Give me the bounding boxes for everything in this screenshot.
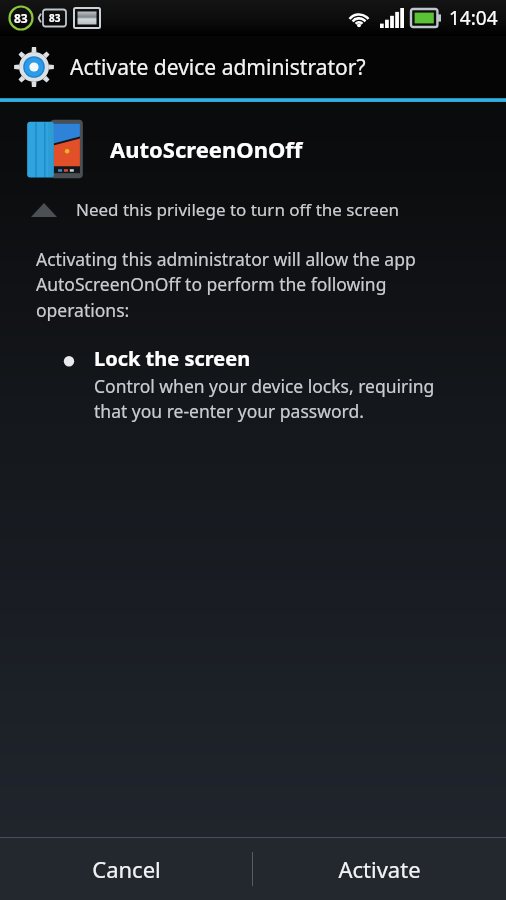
staticText: Activate <box>338 854 421 884</box>
staticText: 83 <box>49 11 61 25</box>
staticText: Control when your device locks, requirin… <box>94 374 466 423</box>
staticText: Activating this administrator will allow… <box>36 247 460 323</box>
staticText: Lock the screen <box>94 345 251 372</box>
button[interactable]: Cancel <box>0 838 252 900</box>
staticText: Need this privilege to turn off the scre… <box>76 198 400 221</box>
staticText: Cancel <box>92 854 161 884</box>
staticText: Activate device administrator? <box>70 53 366 82</box>
button[interactable]: Need this privilege to turn off the scre… <box>0 194 506 225</box>
staticText: 83 <box>14 10 28 26</box>
staticText: AutoScreenOnOff <box>110 134 303 164</box>
button[interactable]: Activate <box>253 838 506 900</box>
staticText: 14:04 <box>449 5 498 31</box>
